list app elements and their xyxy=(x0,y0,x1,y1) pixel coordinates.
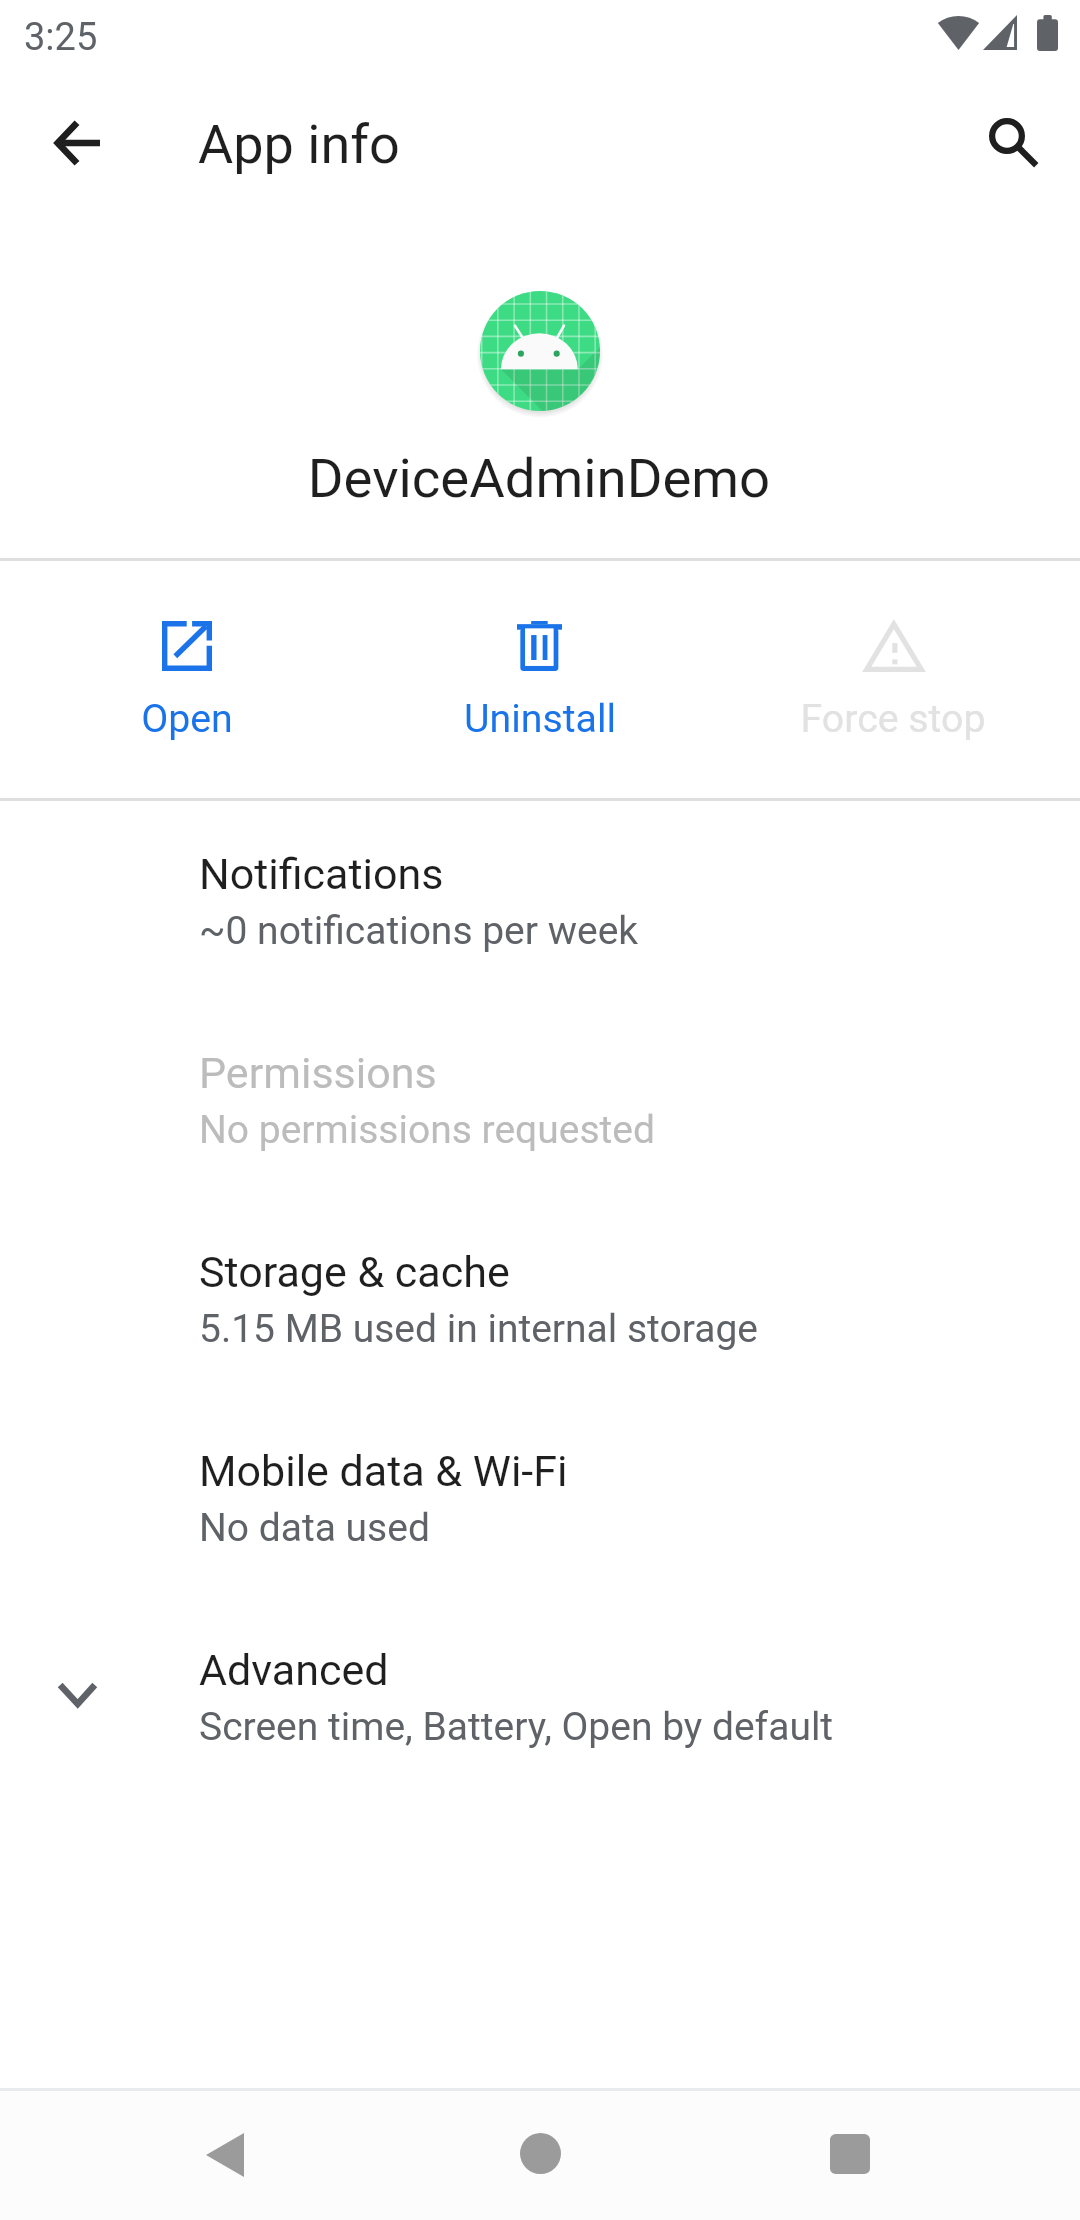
staticText: DeviceAdminDemo xyxy=(89,446,989,510)
button[interactable]: Permissions xyxy=(0,1030,1080,1229)
staticText: Notifications xyxy=(199,849,444,899)
staticText: App info xyxy=(198,113,400,176)
button[interactable]: Uninstall xyxy=(364,561,717,798)
staticText: No permissions requested xyxy=(199,1107,655,1153)
button[interactable]: Notifications xyxy=(0,831,1080,1030)
button[interactable]: Storage & cache xyxy=(0,1229,1080,1428)
staticText: 5.15 MB used in internal storage xyxy=(199,1306,758,1352)
staticText: Uninstall xyxy=(370,696,710,742)
button[interactable]: Open xyxy=(11,561,364,798)
staticText: Force stop xyxy=(723,696,1063,742)
button[interactable]: Search xyxy=(951,86,1063,198)
staticText: 3:25 xyxy=(24,15,98,60)
button[interactable]: Advanced xyxy=(0,1627,1080,1826)
button[interactable]: Home xyxy=(450,2089,630,2218)
staticText: Permissions xyxy=(199,1048,437,1098)
button[interactable]: Back xyxy=(135,2090,315,2219)
staticText: Open xyxy=(17,696,357,742)
staticText: Mobile data & Wi-Fi xyxy=(199,1446,568,1496)
staticText: ~0 notifications per week xyxy=(199,908,639,954)
staticText: Storage & cache xyxy=(199,1247,510,1297)
button[interactable]: Mobile data & Wi-Fi xyxy=(0,1428,1080,1627)
staticText: Screen time, Battery, Open by default xyxy=(199,1704,834,1750)
button[interactable]: Navigate up xyxy=(21,87,133,199)
button[interactable]: Force stop xyxy=(717,561,1070,798)
staticText: No data used xyxy=(199,1505,430,1551)
button[interactable]: Recent apps xyxy=(760,2089,940,2218)
staticText: Advanced xyxy=(199,1645,389,1695)
